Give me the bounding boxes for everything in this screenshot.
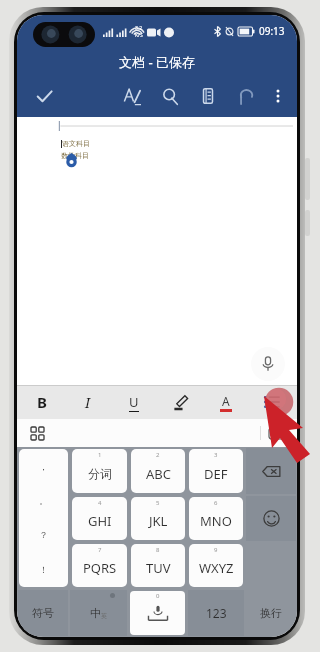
staticText: B: [37, 392, 47, 412]
button[interactable]: ？: [19, 517, 68, 552]
button[interactable]: Hide keyboard: [265, 423, 287, 443]
staticText: 9: [214, 546, 218, 554]
staticText: 3: [214, 451, 218, 459]
button[interactable]: Italic: [73, 385, 103, 419]
staticText: 09:13: [259, 24, 285, 38]
button[interactable]: ！: [19, 552, 68, 587]
button[interactable]: ，: [19, 449, 68, 483]
button[interactable]: 3: [189, 449, 243, 493]
button[interactable]: 符号: [18, 590, 68, 636]
staticText: 符号: [32, 606, 54, 620]
staticText: WXYZ: [199, 559, 234, 577]
staticText: ？: [39, 529, 48, 540]
button[interactable]: 1: [72, 449, 127, 493]
button[interactable]: Voice input: [251, 347, 285, 381]
staticText: 英: [101, 612, 107, 620]
button[interactable]: Emoji: [246, 496, 296, 541]
staticText: DEF: [204, 465, 228, 483]
staticText: 0: [156, 592, 160, 600]
staticText: U: [129, 393, 139, 411]
staticText: 换行: [260, 606, 282, 620]
staticText: MNO: [200, 512, 232, 530]
button[interactable]: Search: [155, 81, 185, 111]
staticText: 6: [214, 499, 218, 507]
button[interactable]: 6: [189, 497, 243, 540]
staticText: 5: [156, 499, 160, 507]
staticText: ，: [39, 461, 48, 472]
staticText: ！: [39, 564, 48, 575]
staticText: GHI: [88, 512, 112, 530]
button[interactable]: 换行: [245, 589, 297, 637]
button[interactable]: Bold: [27, 385, 57, 419]
button[interactable]: 5: [131, 497, 185, 540]
staticText: 中: [90, 606, 101, 620]
staticText: 。: [39, 495, 48, 506]
staticText: JKL: [149, 512, 168, 530]
button[interactable]: Space or voice input: [130, 591, 185, 635]
staticText: I: [85, 393, 91, 412]
button[interactable]: Apps: [25, 421, 49, 445]
button[interactable]: 7: [72, 544, 127, 587]
staticText: 文档 - 已保存: [119, 53, 195, 71]
staticText: 1: [98, 451, 102, 459]
staticText: 语文科目: [62, 139, 90, 148]
button[interactable]: Done: [27, 79, 61, 113]
button[interactable]: Underline: [119, 385, 149, 419]
button[interactable]: Highlight: [165, 385, 195, 419]
button[interactable]: 123: [188, 590, 244, 636]
staticText: ABC: [146, 465, 171, 483]
staticText: K/S: [135, 32, 143, 39]
staticText: PQRS: [83, 559, 117, 577]
button[interactable]: 2: [131, 449, 185, 493]
button[interactable]: 4: [72, 497, 127, 540]
button[interactable]: More options: [265, 83, 291, 109]
button[interactable]: 9: [189, 544, 243, 587]
staticText: 3.2: [135, 25, 143, 32]
button[interactable]: Text color: [211, 385, 241, 419]
button[interactable]: 8: [131, 544, 185, 587]
button[interactable]: View mode: [193, 81, 223, 111]
staticText: 数学科目: [61, 151, 89, 160]
staticText: 7: [98, 546, 102, 554]
button[interactable]: 中: [70, 590, 127, 636]
staticText: A: [222, 393, 230, 409]
staticText: 4: [98, 499, 102, 507]
button[interactable]: Bullet list: [257, 385, 287, 419]
staticText: 123: [206, 605, 227, 621]
staticText: 2: [156, 451, 160, 459]
staticText: TUV: [146, 559, 171, 577]
button[interactable]: Undo: [231, 81, 261, 111]
button[interactable]: Ink: [117, 81, 147, 111]
staticText: 分词: [88, 466, 112, 481]
button[interactable]: Backspace: [246, 448, 296, 494]
staticText: 8: [156, 546, 160, 554]
